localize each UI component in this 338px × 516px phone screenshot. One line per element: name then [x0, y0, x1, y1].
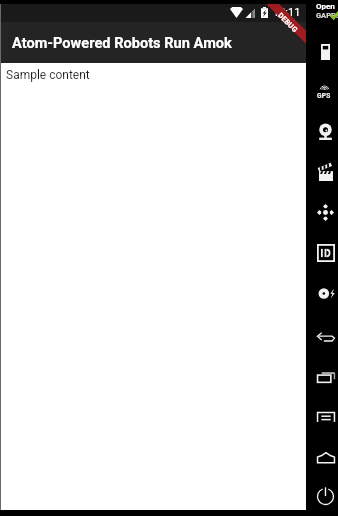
button[interactable]: Menu: [306, 399, 338, 435]
button[interactable]: Back: [306, 319, 338, 355]
button[interactable]: GPS: [306, 74, 338, 106]
staticText: 13:11: [273, 6, 301, 19]
button[interactable]: Device ID: [306, 235, 338, 271]
button[interactable]: Atom-Powered Robots Run Amok: [0, 22, 306, 63]
staticText: GPS: [317, 92, 331, 100]
button[interactable]: Overview: [306, 359, 338, 395]
button[interactable]: Battery: [306, 275, 338, 311]
button[interactable]: Record screen: [306, 154, 338, 190]
staticText: Open: [316, 2, 335, 11]
button[interactable]: Power: [306, 479, 338, 515]
button[interactable]: Home: [306, 439, 338, 475]
button[interactable]: Camera: [306, 114, 338, 150]
button[interactable]: Device: [306, 34, 338, 70]
staticText: GAPPS: [316, 11, 338, 20]
staticText: DEBUG: [276, 11, 300, 35]
staticText: Atom-Powered Robots Run Amok: [12, 34, 232, 51]
staticText: Sample content: [6, 68, 90, 82]
button[interactable]: Directional pad: [306, 195, 338, 231]
